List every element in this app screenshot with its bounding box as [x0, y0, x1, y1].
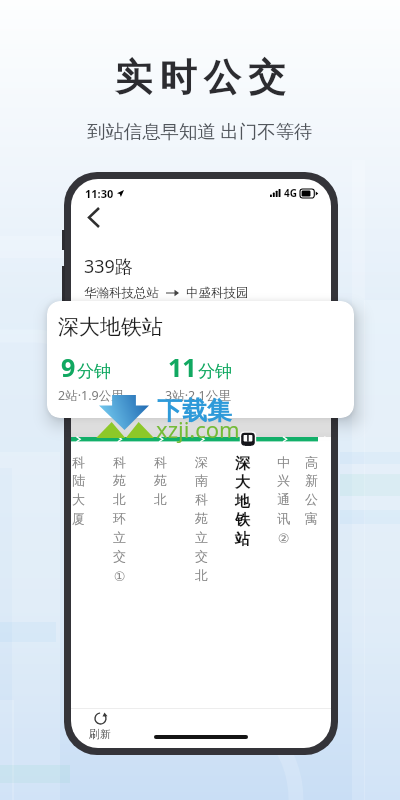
staticText: 华瀚科技总站	[84, 285, 159, 301]
staticText: 下载集	[157, 395, 232, 426]
staticText: 深大地铁站	[58, 314, 163, 340]
button[interactable]: 深 南 科 苑 立 交 北	[181, 454, 222, 584]
button[interactable]: 刷新	[89, 712, 111, 741]
button[interactable]: 科 苑 北 环 立 交 ①	[99, 454, 140, 584]
staticText: 3站·2.1公里	[165, 387, 231, 404]
button[interactable]: 科 苑 北	[140, 454, 181, 508]
staticText: 高 新 公 寓	[305, 454, 318, 527]
staticText: 分钟	[198, 361, 232, 382]
staticText: 9	[61, 350, 76, 384]
staticText: 科 苑 北	[154, 454, 167, 508]
staticText: 刷新	[89, 727, 111, 741]
staticText: 科 苑 北 环 立 交 ①	[113, 454, 126, 584]
button[interactable]: 深大地铁站	[47, 301, 354, 418]
button[interactable]: 高 新 公 寓	[304, 454, 318, 527]
button[interactable]: 中 兴 通 讯 ②	[263, 454, 304, 546]
staticText: 深 大 地 铁 站	[235, 454, 250, 549]
staticText: xzji.com	[156, 414, 240, 444]
staticText: 11:30	[85, 186, 114, 201]
staticText: 339路	[84, 254, 133, 279]
button[interactable]: Back	[77, 200, 111, 234]
staticText: 中 兴 通 讯 ②	[277, 454, 290, 546]
staticText: 科 陆 大 厦	[72, 454, 85, 527]
staticText: 深 南 科 苑 立 交 北	[195, 454, 208, 584]
staticText: 实时公交	[115, 54, 293, 101]
staticText: 4G	[284, 186, 297, 200]
staticText: 到站信息早知道 出门不等待	[87, 118, 313, 143]
button[interactable]: 深 大 地 铁 站	[222, 454, 263, 549]
staticText: 中盛科技园	[186, 285, 249, 301]
staticText: 分钟	[77, 361, 111, 382]
button[interactable]: 科 陆 大 厦	[71, 454, 99, 527]
staticText: 2站·1.9公里	[58, 387, 124, 404]
staticText: 11	[168, 350, 197, 384]
